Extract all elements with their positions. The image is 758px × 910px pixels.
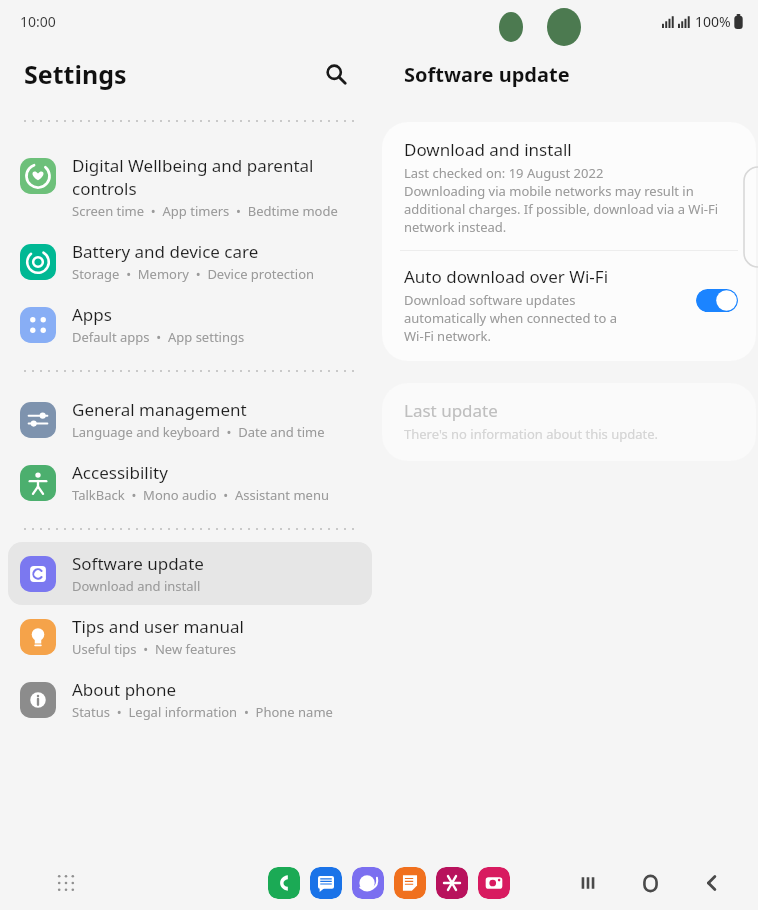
staticText: There's no information about this update… — [404, 425, 658, 443]
staticText: Download software updates automatically … — [404, 291, 633, 345]
button[interactable]: Camera — [478, 867, 510, 899]
button[interactable]: Tips and user manual — [8, 605, 372, 668]
button[interactable]: Back — [692, 863, 732, 903]
button[interactable]: Download and install — [382, 122, 756, 250]
button[interactable]: Auto download over Wi-Fi — [382, 251, 756, 361]
button[interactable]: Phone — [268, 867, 300, 899]
staticText: Language and keyboard • Date and time — [72, 423, 325, 441]
staticText: Download and install — [404, 138, 572, 161]
button[interactable]: Accessibility — [8, 451, 372, 514]
staticText: Last update — [404, 399, 498, 422]
staticText: Apps — [72, 303, 112, 326]
button[interactable]: Gallery — [436, 867, 468, 899]
staticText: Software update — [404, 61, 570, 88]
button[interactable]: Digital Wellbeing and parental controls — [8, 144, 372, 230]
button[interactable]: Messages — [310, 867, 342, 899]
button[interactable]: General management — [8, 388, 372, 451]
staticText: Accessibility — [72, 461, 168, 484]
button[interactable]: Recents — [568, 863, 608, 903]
button[interactable]: Notes — [394, 867, 426, 899]
staticText: Last checked on: 19 August 2022 Download… — [404, 164, 734, 236]
button[interactable]: About phone — [8, 668, 372, 731]
staticText: Storage • Memory • Device protection — [72, 265, 315, 283]
staticText: Download and install — [72, 577, 201, 595]
staticText: Settings — [24, 57, 127, 91]
button[interactable]: Home — [630, 863, 670, 903]
staticText: Status • Legal information • Phone name — [72, 703, 333, 721]
staticText: Digital Wellbeing and parental controls — [72, 154, 314, 200]
staticText: TalkBack • Mono audio • Assistant menu — [72, 486, 329, 504]
staticText: 10:00 — [20, 12, 56, 31]
button[interactable]: Auto download over Wi-Fi toggle — [696, 289, 738, 312]
button[interactable]: Battery and device care — [8, 230, 372, 293]
staticText: 100% — [695, 12, 731, 31]
button[interactable]: Last update — [382, 383, 756, 461]
staticText: Auto download over Wi-Fi — [404, 265, 609, 288]
button[interactable]: Internet — [352, 867, 384, 899]
button[interactable]: Apps — [8, 293, 372, 356]
staticText: General management — [72, 398, 247, 421]
button[interactable]: All apps — [46, 863, 86, 903]
staticText: Default apps • App settings — [72, 328, 245, 346]
staticText: Battery and device care — [72, 240, 259, 263]
staticText: About phone — [72, 678, 177, 701]
staticText: Tips and user manual — [72, 615, 244, 638]
staticText: Useful tips • New features — [72, 640, 237, 658]
button[interactable]: Search — [316, 54, 356, 94]
staticText: Screen time • App timers • Bedtime mode — [72, 202, 338, 220]
button[interactable]: Software update — [8, 542, 372, 605]
staticText: Software update — [72, 552, 204, 575]
